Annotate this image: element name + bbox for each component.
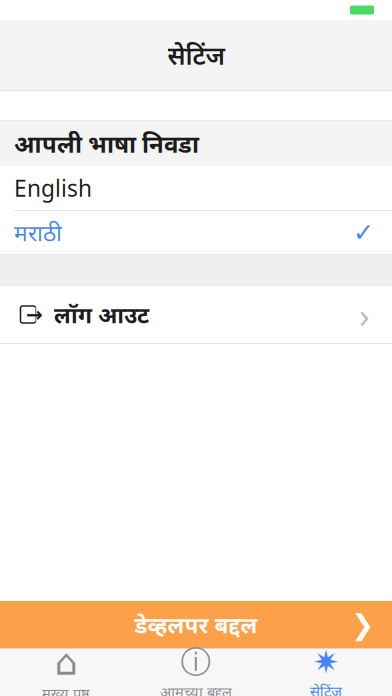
staticText: ✓ <box>353 218 374 247</box>
button[interactable]: Settings <box>261 649 391 696</box>
button[interactable]: English <box>0 166 392 210</box>
button[interactable]: डेव्हलपर बद्दल <box>0 601 392 648</box>
staticText: ✷ <box>312 644 339 680</box>
staticText: आपली भाषा निवडा <box>14 128 199 159</box>
staticText: सेटिंज <box>167 38 224 72</box>
button[interactable]: About us <box>131 649 261 696</box>
staticText: मराठी <box>14 217 62 247</box>
staticText: मुख्य पृष्ठ <box>42 684 90 696</box>
staticText: → <box>26 303 43 326</box>
staticText: English <box>14 173 92 203</box>
button[interactable]: → <box>0 286 392 343</box>
staticText: आमच्या बद्दल <box>160 682 232 696</box>
staticText: › <box>359 291 370 337</box>
staticText: ⓘ <box>180 643 211 681</box>
button[interactable]: मराठी <box>0 211 392 254</box>
staticText: ❯ <box>351 609 374 640</box>
button[interactable]: Home <box>1 649 131 696</box>
staticText: सेटिंज <box>310 681 342 696</box>
staticText: डेव्हलपर बद्दल <box>134 609 257 639</box>
staticText: लॉग आउट <box>54 299 149 329</box>
staticText: ⌂ <box>54 642 77 683</box>
